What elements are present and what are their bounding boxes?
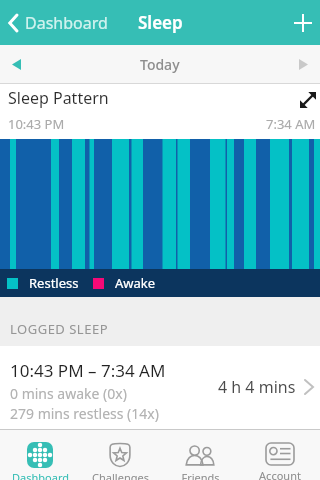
staticText: Awake <box>115 274 156 292</box>
staticText: Today <box>140 55 180 74</box>
button[interactable]: 10:43 PM – 7:34 AM <box>0 346 320 428</box>
staticText: Friends <box>181 470 220 480</box>
staticText: LOGGED SLEEP <box>10 320 109 338</box>
staticText: 10:43 PM <box>8 115 65 133</box>
button[interactable]: Account <box>240 430 320 480</box>
staticText: Dashboard <box>12 470 69 480</box>
staticText: 4 h 4 mins <box>218 376 296 398</box>
staticText: Sleep <box>138 11 183 34</box>
staticText: 0 mins awake (0x) <box>10 384 127 403</box>
button[interactable]: Dashboard <box>0 430 80 480</box>
staticText: 10:43 PM – 7:34 AM <box>10 359 166 382</box>
button[interactable] <box>294 14 320 32</box>
staticText: Sleep Pattern <box>8 87 109 109</box>
staticText: Account <box>259 468 301 480</box>
button[interactable]: Friends <box>160 430 240 480</box>
staticText: Challenges <box>92 470 149 480</box>
button[interactable] <box>299 59 320 70</box>
button[interactable] <box>0 59 21 70</box>
button[interactable] <box>300 84 320 108</box>
staticText: Dashboard <box>25 12 108 34</box>
staticText: Restless <box>29 274 79 292</box>
staticText: 7:34 AM <box>266 115 316 133</box>
staticText: 279 mins restless (14x) <box>10 404 159 423</box>
button[interactable]: Dashboard <box>0 12 108 34</box>
button[interactable]: Challenges <box>80 430 160 480</box>
